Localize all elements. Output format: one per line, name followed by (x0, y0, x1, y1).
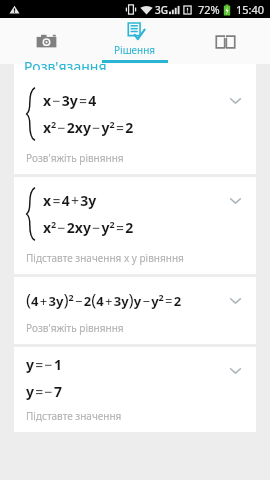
button[interactable]: x − 3y = 4 (14, 77, 256, 174)
staticText: Розв'язання (24, 57, 107, 70)
staticText: 72% (198, 2, 220, 17)
staticText: Підставте значення x у рівняння (26, 251, 184, 265)
button[interactable]: Камера (2, 18, 90, 64)
other: Розгорнути крок (229, 364, 242, 377)
staticText: Підставте значення (26, 409, 122, 423)
staticText: x2 − 2xy − y2 = 2 (43, 118, 134, 137)
staticText: 3G (155, 3, 168, 17)
button[interactable]: (4 + 3y)2 − 2(4 + 3y)y − y2 = 2 (14, 277, 256, 344)
staticText: Розв'яжіть рівняння (26, 321, 124, 335)
staticText: Розв'яжіть рівняння (26, 151, 124, 165)
staticText: x = 4 + 3y (43, 191, 97, 210)
staticText: 15:40 (236, 2, 265, 17)
button[interactable]: x = 4 + 3y (14, 177, 256, 274)
button[interactable]: Рішення (91, 18, 179, 64)
staticText: Рішення (114, 43, 156, 57)
other: Розгорнути крок (229, 194, 242, 207)
staticText: x − 3y = 4 (43, 91, 97, 110)
button[interactable]: Підручник (181, 18, 269, 64)
staticText: (4 + 3y)2 − 2(4 + 3y)y − y2 = 2 (26, 288, 182, 311)
other: Розгорнути крок (229, 94, 242, 107)
other: Розгорнути крок (229, 294, 242, 307)
staticText: y = − 1 (26, 355, 62, 374)
staticText: y = − 7 (26, 382, 62, 401)
button[interactable]: y = − 1 (14, 347, 256, 432)
staticText: x2 − 2xy − y2 = 2 (43, 218, 134, 237)
